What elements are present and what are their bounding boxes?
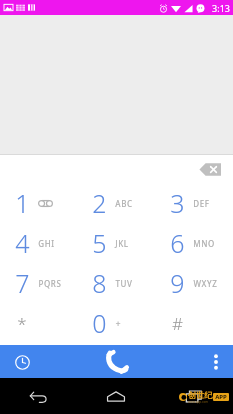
staticText: ABC [115,198,133,209]
staticText: 2 [92,186,107,220]
staticText: MNO [193,238,215,249]
button[interactable]: * [0,303,77,343]
staticText: TUV [115,278,133,289]
staticText: 5 [92,226,107,260]
staticText: # [172,312,183,335]
staticText: 6 [170,226,185,260]
button[interactable]: Call history [8,348,36,376]
staticText: APP [215,393,227,401]
staticText: 7 [15,266,30,300]
button[interactable]: 6 [155,223,233,263]
staticText: GHI [38,238,55,249]
staticText: 1 [15,186,30,220]
staticText: 4 [15,226,30,260]
staticText: + [115,317,121,329]
button[interactable]: More options [205,345,227,378]
staticText: 8 [92,266,107,300]
button[interactable]: 7 [0,263,77,303]
button[interactable]: Back [0,378,77,414]
staticText: 3 [170,186,185,220]
button[interactable]: 4 [0,223,77,263]
button[interactable]: Call [87,345,147,378]
button[interactable]: 8 [77,263,155,303]
button[interactable]: 0 [77,303,155,343]
button[interactable]: 3 [155,183,233,223]
staticText: PQRS [38,278,62,289]
button[interactable]: # [155,303,233,343]
button[interactable]: 1 [0,183,77,223]
staticText: DEF [193,198,210,209]
staticText: www.app.com [188,400,208,404]
button[interactable]: Recent apps [155,378,233,414]
button[interactable]: 9 [155,263,233,303]
button[interactable]: Home [77,378,155,414]
button[interactable]: Backspace [197,159,223,179]
staticText: JKL [115,238,129,249]
staticText: WXYZ [193,278,218,289]
staticText: 创世纪 [188,390,212,400]
staticText: 0 [92,306,107,340]
staticText: 9 [170,266,185,300]
button[interactable]: 5 [77,223,155,263]
staticText: 3:13 [212,2,230,14]
staticText: * [17,312,27,335]
button[interactable]: 2 [77,183,155,223]
